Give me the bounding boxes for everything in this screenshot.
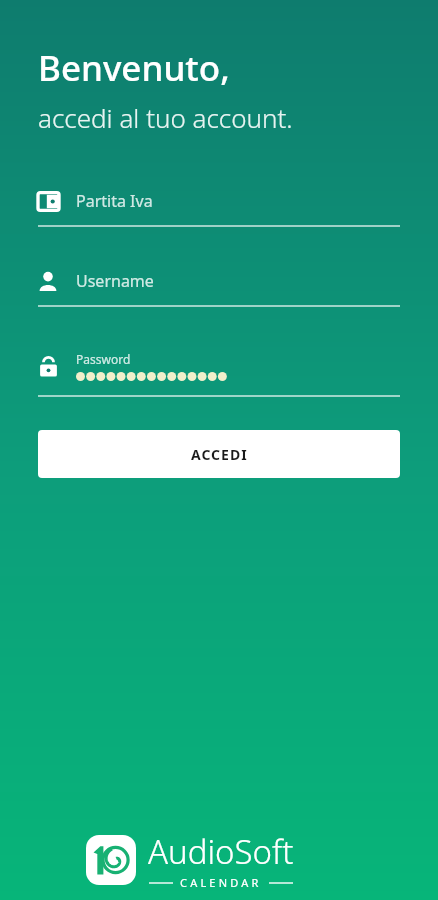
button[interactable]: Password	[0, 337, 438, 397]
staticText: Username	[76, 270, 154, 292]
staticText: CALENDAR	[180, 875, 262, 890]
staticText: Password	[76, 351, 131, 367]
staticText: AudioSoft	[148, 829, 294, 874]
staticText: accedi al tuo account.	[38, 100, 293, 135]
button[interactable]: Partita Iva	[0, 177, 438, 257]
button[interactable]: Username	[0, 257, 438, 337]
staticText: Benvenuto,	[38, 44, 230, 92]
staticText: Partita Iva	[76, 190, 153, 212]
staticText: ACCEDI	[191, 445, 248, 464]
button[interactable]: ACCEDI	[38, 430, 400, 478]
